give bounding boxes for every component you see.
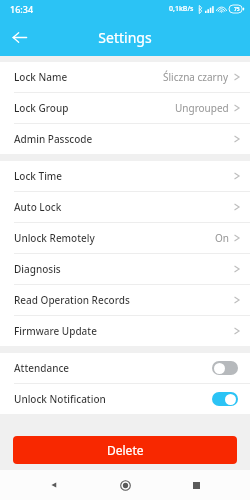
button[interactable]: Unlock Notification <box>0 383 250 414</box>
button[interactable]: Lock Group <box>0 92 250 123</box>
staticText: Read Operation Records <box>14 293 130 307</box>
button[interactable]: Firmware Update <box>0 315 250 346</box>
staticText: 16:34 <box>10 3 34 15</box>
staticText: Unlock Notification <box>14 392 106 406</box>
staticText: Diagnosis <box>14 262 61 276</box>
button[interactable]: Lock Time <box>0 161 250 191</box>
staticText: Lock Name <box>14 70 68 84</box>
staticText: Delete <box>107 442 144 458</box>
button[interactable]: Lock Name <box>0 62 250 92</box>
staticText: Settings <box>98 28 152 47</box>
button[interactable]: Read Operation Records <box>0 284 250 315</box>
button[interactable]: Back <box>0 18 38 56</box>
button[interactable]: Auto Lock <box>0 191 250 222</box>
button[interactable]: Attendance <box>212 361 238 375</box>
staticText: 75 <box>234 6 240 13</box>
staticText: On <box>215 231 229 245</box>
staticText: Unlock Remotely <box>14 231 95 245</box>
staticText: Lock Group <box>14 101 69 115</box>
button[interactable]: Diagnosis <box>0 253 250 284</box>
button[interactable]: Back <box>37 470 71 500</box>
button[interactable]: Delete <box>13 436 237 464</box>
button[interactable]: Attendance <box>0 353 250 383</box>
staticText: Attendance <box>14 361 70 375</box>
staticText: 0,1kB/s <box>169 4 194 14</box>
button[interactable]: Unlock Notification <box>212 392 238 406</box>
staticText: Lock Time <box>14 169 63 183</box>
button[interactable]: Home <box>108 470 142 500</box>
button[interactable]: Admin Passcode <box>0 123 250 154</box>
staticText: Admin Passcode <box>14 132 93 146</box>
staticText: Ungrouped <box>175 101 229 115</box>
button[interactable]: Recent apps <box>179 470 213 500</box>
staticText: Ślicznа czarny <box>163 70 229 84</box>
button[interactable]: Unlock Remotely <box>0 222 250 253</box>
staticText: Firmware Update <box>14 324 97 338</box>
staticText: Auto Lock <box>14 200 62 214</box>
